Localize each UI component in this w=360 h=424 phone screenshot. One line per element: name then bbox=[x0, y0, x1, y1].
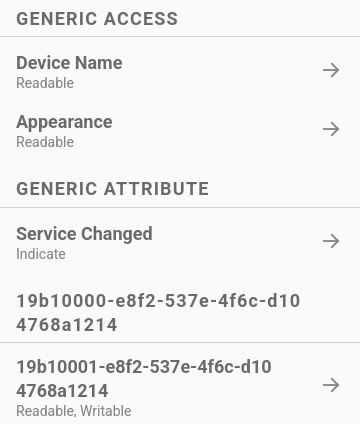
staticText: Readable bbox=[16, 75, 74, 91]
other: Open bbox=[320, 377, 344, 397]
staticText: GENERIC ATTRIBUTE bbox=[16, 178, 210, 199]
button[interactable]: 19b10001-e8f2-537e-4f6c-d10 4768a1214 bbox=[0, 343, 360, 424]
other: Open bbox=[320, 62, 344, 82]
staticText: 19b10000-e8f2-537e-4f6c-d10 4768a1214 bbox=[16, 290, 302, 335]
staticText: 19b10001-e8f2-537e-4f6c-d10 4768a1214 bbox=[16, 356, 272, 401]
staticText: Indicate bbox=[16, 246, 66, 262]
staticText: Device Name bbox=[16, 52, 123, 73]
staticText: Readable bbox=[16, 134, 74, 150]
button[interactable]: Service Changed bbox=[0, 208, 360, 267]
staticText: Readable, Writable bbox=[16, 403, 132, 417]
button[interactable]: Appearance bbox=[0, 96, 360, 155]
staticText: GENERIC ACCESS bbox=[16, 8, 179, 29]
other: Open bbox=[320, 121, 344, 141]
staticText: Service Changed bbox=[16, 223, 153, 244]
other: Open bbox=[320, 233, 344, 253]
button[interactable]: 19b10000-e8f2-537e-4f6c-d10 4768a1214 bbox=[0, 267, 360, 342]
staticText: Appearance bbox=[16, 111, 113, 132]
button[interactable]: Device Name bbox=[0, 37, 360, 96]
